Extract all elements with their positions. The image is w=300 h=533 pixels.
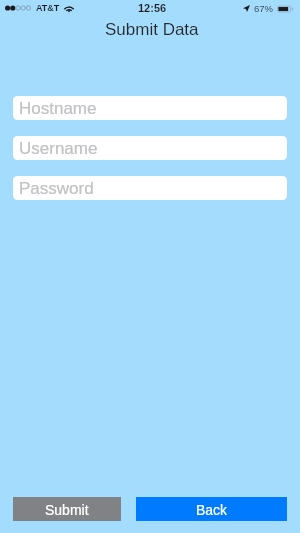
staticText: Submit <box>45 502 89 518</box>
staticText: Back <box>196 502 228 518</box>
button[interactable]: Username <box>13 136 287 160</box>
staticText: 12:56 <box>138 2 167 14</box>
button[interactable]: Back <box>136 497 287 521</box>
staticText: Username <box>19 139 98 158</box>
staticText: 67% <box>254 3 274 14</box>
staticText: Submit Data <box>105 20 199 39</box>
staticText: Hostname <box>19 99 97 118</box>
button[interactable]: Submit <box>13 497 121 521</box>
staticText: AT&T <box>36 3 60 13</box>
button[interactable]: Hostname <box>13 96 287 120</box>
button[interactable]: Password <box>13 176 287 200</box>
staticText: Password <box>19 179 94 198</box>
